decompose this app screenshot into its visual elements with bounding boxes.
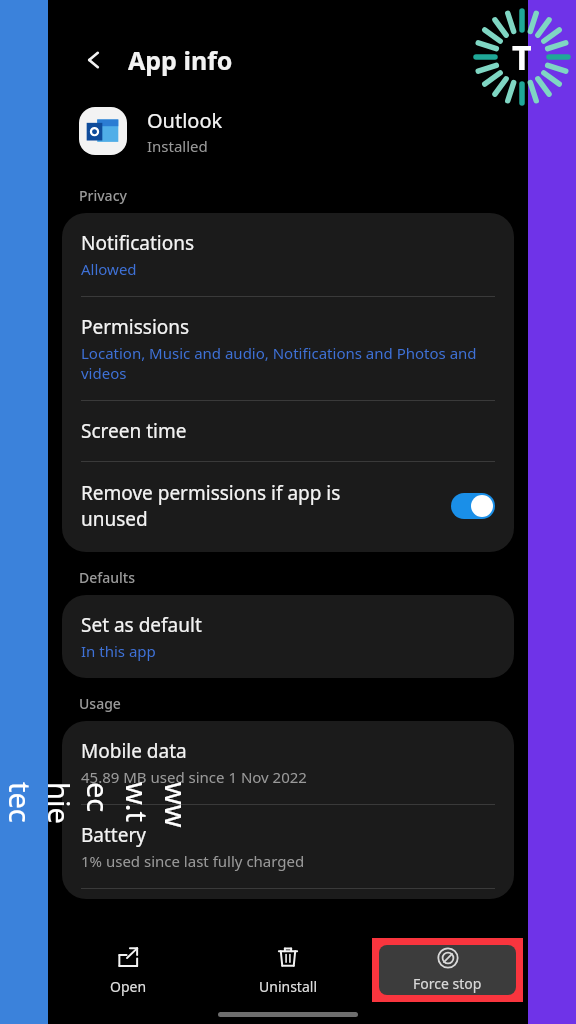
staticText: Open <box>110 977 147 996</box>
staticText: Battery <box>81 822 146 848</box>
staticText: T <box>512 34 532 80</box>
button[interactable]: Remove permissions if app is unused <box>62 462 514 552</box>
staticText: Location, Music and audio, Notifications… <box>81 343 477 383</box>
staticText: Screen time <box>81 418 187 444</box>
staticText: Force stop <box>413 974 482 993</box>
button[interactable]: Uninstall <box>208 924 368 1002</box>
staticText: Outlook <box>147 107 223 134</box>
button[interactable]: Screen time <box>62 401 514 461</box>
staticText: 45.89 MB used since 1 Nov 2022 <box>81 767 307 787</box>
staticText: Allowed <box>81 259 137 279</box>
button[interactable]: Notifications <box>62 213 514 296</box>
button[interactable]: Outlook <box>48 98 528 164</box>
button[interactable]: Mobile data <box>62 721 514 804</box>
button[interactable]: Set as default <box>62 595 514 678</box>
staticText: Privacy <box>79 186 127 205</box>
button[interactable]: Open <box>48 924 208 1002</box>
staticText: Set as default <box>81 612 202 638</box>
staticText: Usage <box>79 694 121 713</box>
staticText: www.techietech.tech <box>0 782 196 828</box>
staticText: Mobile data <box>81 738 187 764</box>
staticText: In this app <box>81 641 156 661</box>
staticText: App info <box>128 43 233 77</box>
button[interactable]: Back <box>74 40 114 80</box>
staticText: Defaults <box>79 568 135 587</box>
staticText: Notifications <box>81 230 195 256</box>
staticText: Remove permissions if app is unused <box>81 480 441 532</box>
button[interactable]: Force stop <box>379 945 516 995</box>
button[interactable]: Permissions <box>62 297 514 400</box>
button[interactable]: Battery <box>62 805 514 888</box>
staticText: Permissions <box>81 314 190 340</box>
staticText: 1% used since last fully charged <box>81 851 305 871</box>
staticText: Installed <box>147 136 208 156</box>
button[interactable]: Remove permissions toggle <box>451 493 495 519</box>
staticText: Uninstall <box>259 977 317 996</box>
